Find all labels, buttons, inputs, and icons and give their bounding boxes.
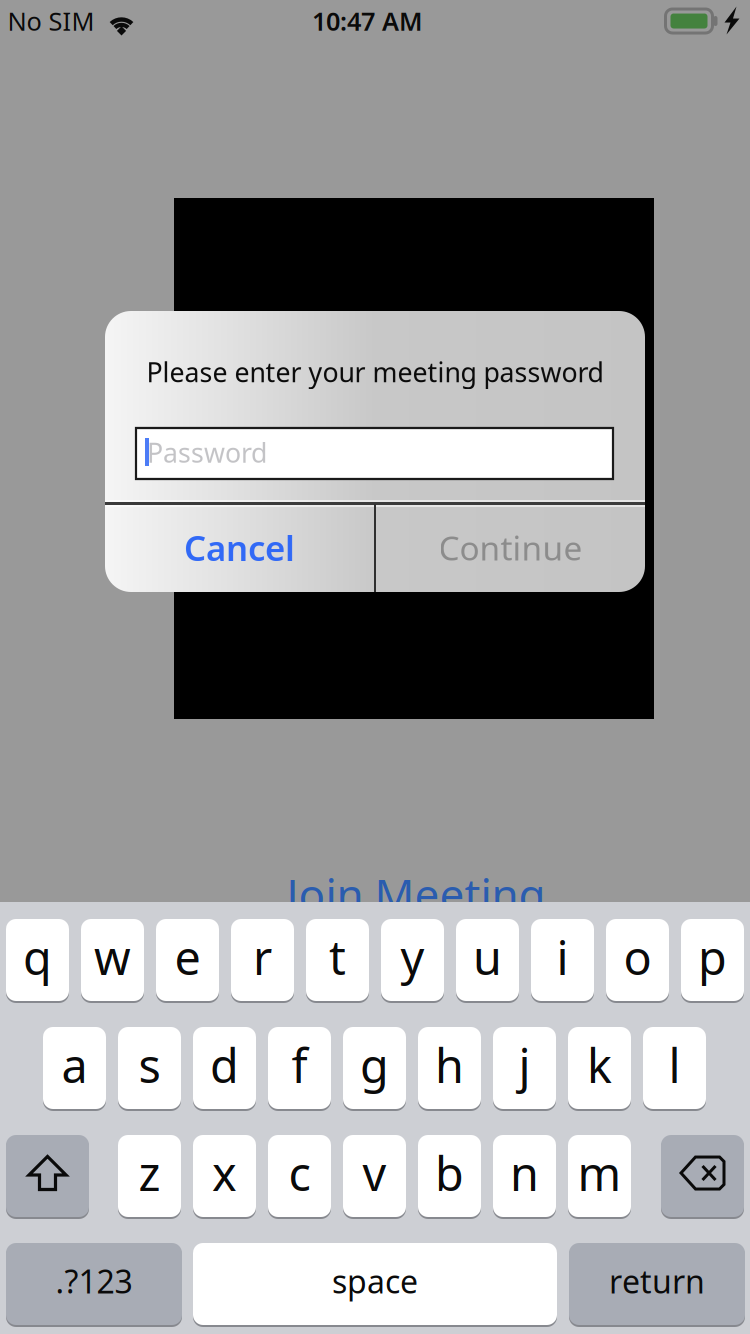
button[interactable]: n (493, 1134, 556, 1218)
staticText: l (668, 1034, 680, 1096)
button[interactable]: y (381, 918, 444, 1002)
button[interactable]: Shift (6, 1134, 89, 1218)
staticText: j (518, 1034, 530, 1096)
button[interactable]: space (193, 1242, 557, 1326)
button[interactable]: p (681, 918, 744, 1002)
button[interactable]: v (343, 1134, 406, 1218)
staticText: r (253, 926, 272, 988)
button[interactable]: z (118, 1134, 181, 1218)
button[interactable]: i (531, 918, 594, 1002)
staticText: z (138, 1142, 160, 1204)
staticText: g (360, 1034, 389, 1096)
staticText: Please enter your meeting password (146, 354, 603, 390)
button[interactable]: Cancel (105, 504, 374, 591)
button[interactable]: g (343, 1026, 406, 1110)
staticText: h (435, 1034, 464, 1096)
button[interactable]: Continue (376, 504, 645, 591)
staticText: v (362, 1142, 386, 1204)
button[interactable]: o (606, 918, 669, 1002)
staticText: Join Meeting (286, 865, 545, 923)
staticText: c (288, 1142, 310, 1204)
button[interactable]: l (643, 1026, 706, 1110)
staticText: i (556, 926, 568, 988)
staticText: k (587, 1034, 612, 1096)
button[interactable]: u (456, 918, 519, 1002)
staticText: x (212, 1142, 237, 1204)
button[interactable]: d (193, 1026, 256, 1110)
button[interactable]: s (118, 1026, 181, 1110)
button[interactable]: k (568, 1026, 631, 1110)
staticText: Continue (438, 525, 582, 570)
staticText: Password (147, 435, 267, 470)
button[interactable]: h (418, 1026, 481, 1110)
staticText: d (210, 1034, 239, 1096)
staticText: m (577, 1142, 621, 1204)
staticText: space (332, 1260, 418, 1302)
button[interactable]: e (156, 918, 219, 1002)
staticText: t (329, 926, 346, 988)
button[interactable]: j (493, 1026, 556, 1110)
staticText: y (400, 926, 424, 988)
button[interactable]: c (268, 1134, 331, 1218)
staticText: e (174, 926, 200, 988)
button[interactable]: r (231, 918, 294, 1002)
staticText: w (94, 926, 131, 988)
staticText: .?123 (55, 1260, 132, 1302)
staticText: f (291, 1034, 307, 1096)
button[interactable]: m (568, 1134, 631, 1218)
staticText: q (23, 926, 52, 988)
staticText: a (61, 1034, 87, 1096)
staticText: Cancel (184, 524, 295, 570)
staticText: No SIM (7, 4, 94, 38)
button[interactable]: f (268, 1026, 331, 1110)
staticText: b (435, 1142, 464, 1204)
button[interactable]: return (569, 1242, 745, 1326)
staticText: n (510, 1142, 539, 1204)
button[interactable]: .?123 (6, 1242, 182, 1326)
button[interactable]: q (6, 918, 69, 1002)
staticText: return (609, 1260, 705, 1302)
button[interactable]: t (306, 918, 369, 1002)
staticText: 10:47 AM (312, 4, 423, 38)
button[interactable]: x (193, 1134, 256, 1218)
staticText: u (473, 926, 502, 988)
button[interactable]: a (43, 1026, 106, 1110)
button[interactable]: b (418, 1134, 481, 1218)
staticText: s (138, 1034, 160, 1096)
button[interactable]: Delete (661, 1134, 744, 1218)
button[interactable]: w (81, 918, 144, 1002)
staticText: p (698, 926, 727, 988)
staticText: o (623, 926, 651, 988)
